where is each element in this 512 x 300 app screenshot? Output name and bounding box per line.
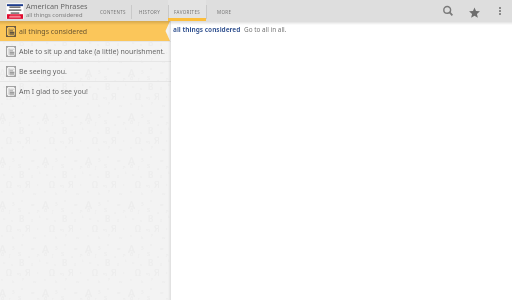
staticText: Am I glad to see you! [19,87,88,97]
button[interactable]: Search [443,6,453,16]
button[interactable]: Able to sit up and take (a little) nouri… [0,41,171,61]
button[interactable]: Am I glad to see you! [0,81,171,101]
staticText: all things considered [26,11,83,19]
button[interactable]: FAVORITES [168,0,206,21]
button[interactable]: CONTENTS [94,0,131,21]
button[interactable]: Favorites [469,7,480,18]
button[interactable]: MORE [206,0,243,21]
button[interactable]: Be seeing you. [0,61,171,81]
button[interactable]: all things considered [0,21,171,41]
button[interactable]: HISTORY [131,0,168,21]
staticText: American Phrases [26,1,88,11]
staticText: all things considered [19,27,88,37]
staticText: Go to all in all. [244,25,287,34]
staticText: MORE [217,9,232,15]
staticText: all things considered [173,25,241,34]
staticText: HISTORY [139,9,161,15]
staticText: FAVORITES [174,9,201,15]
staticText: Be seeing you. [19,67,67,77]
staticText: Able to sit up and take (a little) nouri… [19,47,165,57]
button[interactable]: More options [495,4,505,18]
staticText: CONTENTS [100,9,126,15]
